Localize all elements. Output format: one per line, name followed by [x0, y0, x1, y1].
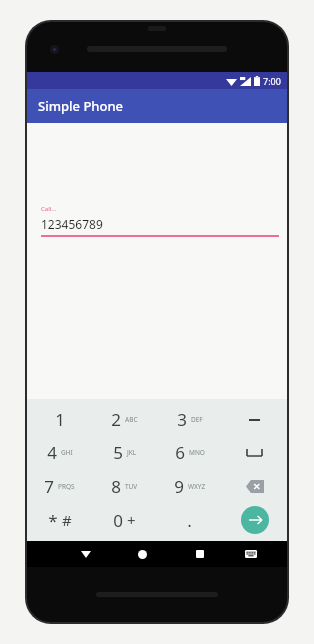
staticText: JKL — [127, 448, 137, 457]
button[interactable]: Switch keyboard — [228, 541, 273, 567]
button[interactable]: 5 — [92, 436, 157, 469]
staticText: 7:00 — [263, 75, 281, 87]
staticText: . — [187, 509, 192, 532]
button[interactable]: Home — [114, 541, 171, 567]
button[interactable]: * — [27, 503, 92, 537]
staticText: 5 — [113, 441, 123, 464]
button[interactable]: . — [157, 503, 222, 537]
button[interactable]: Recent apps — [171, 541, 228, 567]
button[interactable]: Backspace — [222, 469, 287, 503]
staticText: 1 — [55, 408, 65, 431]
staticText: 0 — [113, 509, 123, 532]
button[interactable]: 9 — [157, 469, 222, 503]
staticText: WXYZ — [188, 482, 206, 491]
staticText: 8 — [111, 475, 121, 498]
staticText: # — [62, 510, 72, 530]
staticText: PRQS — [58, 482, 75, 491]
staticText: ABC — [125, 415, 138, 424]
staticText: 123456789 — [41, 216, 103, 232]
staticText: GHI — [61, 448, 73, 457]
staticText: TUV — [125, 482, 138, 491]
button[interactable]: Space — [222, 436, 287, 469]
staticText: 7 — [44, 475, 54, 498]
staticText: 2 — [111, 408, 121, 431]
staticText: Call... — [41, 205, 57, 213]
button[interactable]: Dash — [222, 403, 287, 436]
staticText: + — [127, 510, 136, 530]
button[interactable]: 6 — [157, 436, 222, 469]
staticText: 3 — [177, 408, 187, 431]
staticText: * — [48, 509, 58, 532]
button[interactable]: Call — [222, 503, 287, 537]
staticText: MNO — [189, 448, 205, 457]
button[interactable]: 1 — [27, 403, 92, 436]
button[interactable]: Back — [57, 541, 114, 567]
button[interactable]: 3 — [157, 403, 222, 436]
button[interactable]: 4 — [27, 436, 92, 469]
staticText: Simple Phone — [38, 97, 124, 115]
button[interactable]: 2 — [92, 403, 157, 436]
staticText: 6 — [175, 441, 185, 464]
staticText: 4 — [47, 441, 57, 464]
button[interactable]: 0 — [92, 503, 157, 537]
staticText: DEF — [191, 415, 203, 424]
staticText: 9 — [174, 475, 184, 498]
button[interactable]: 7 — [27, 469, 92, 503]
button[interactable]: Call... — [39, 205, 281, 237]
button[interactable]: 8 — [92, 469, 157, 503]
